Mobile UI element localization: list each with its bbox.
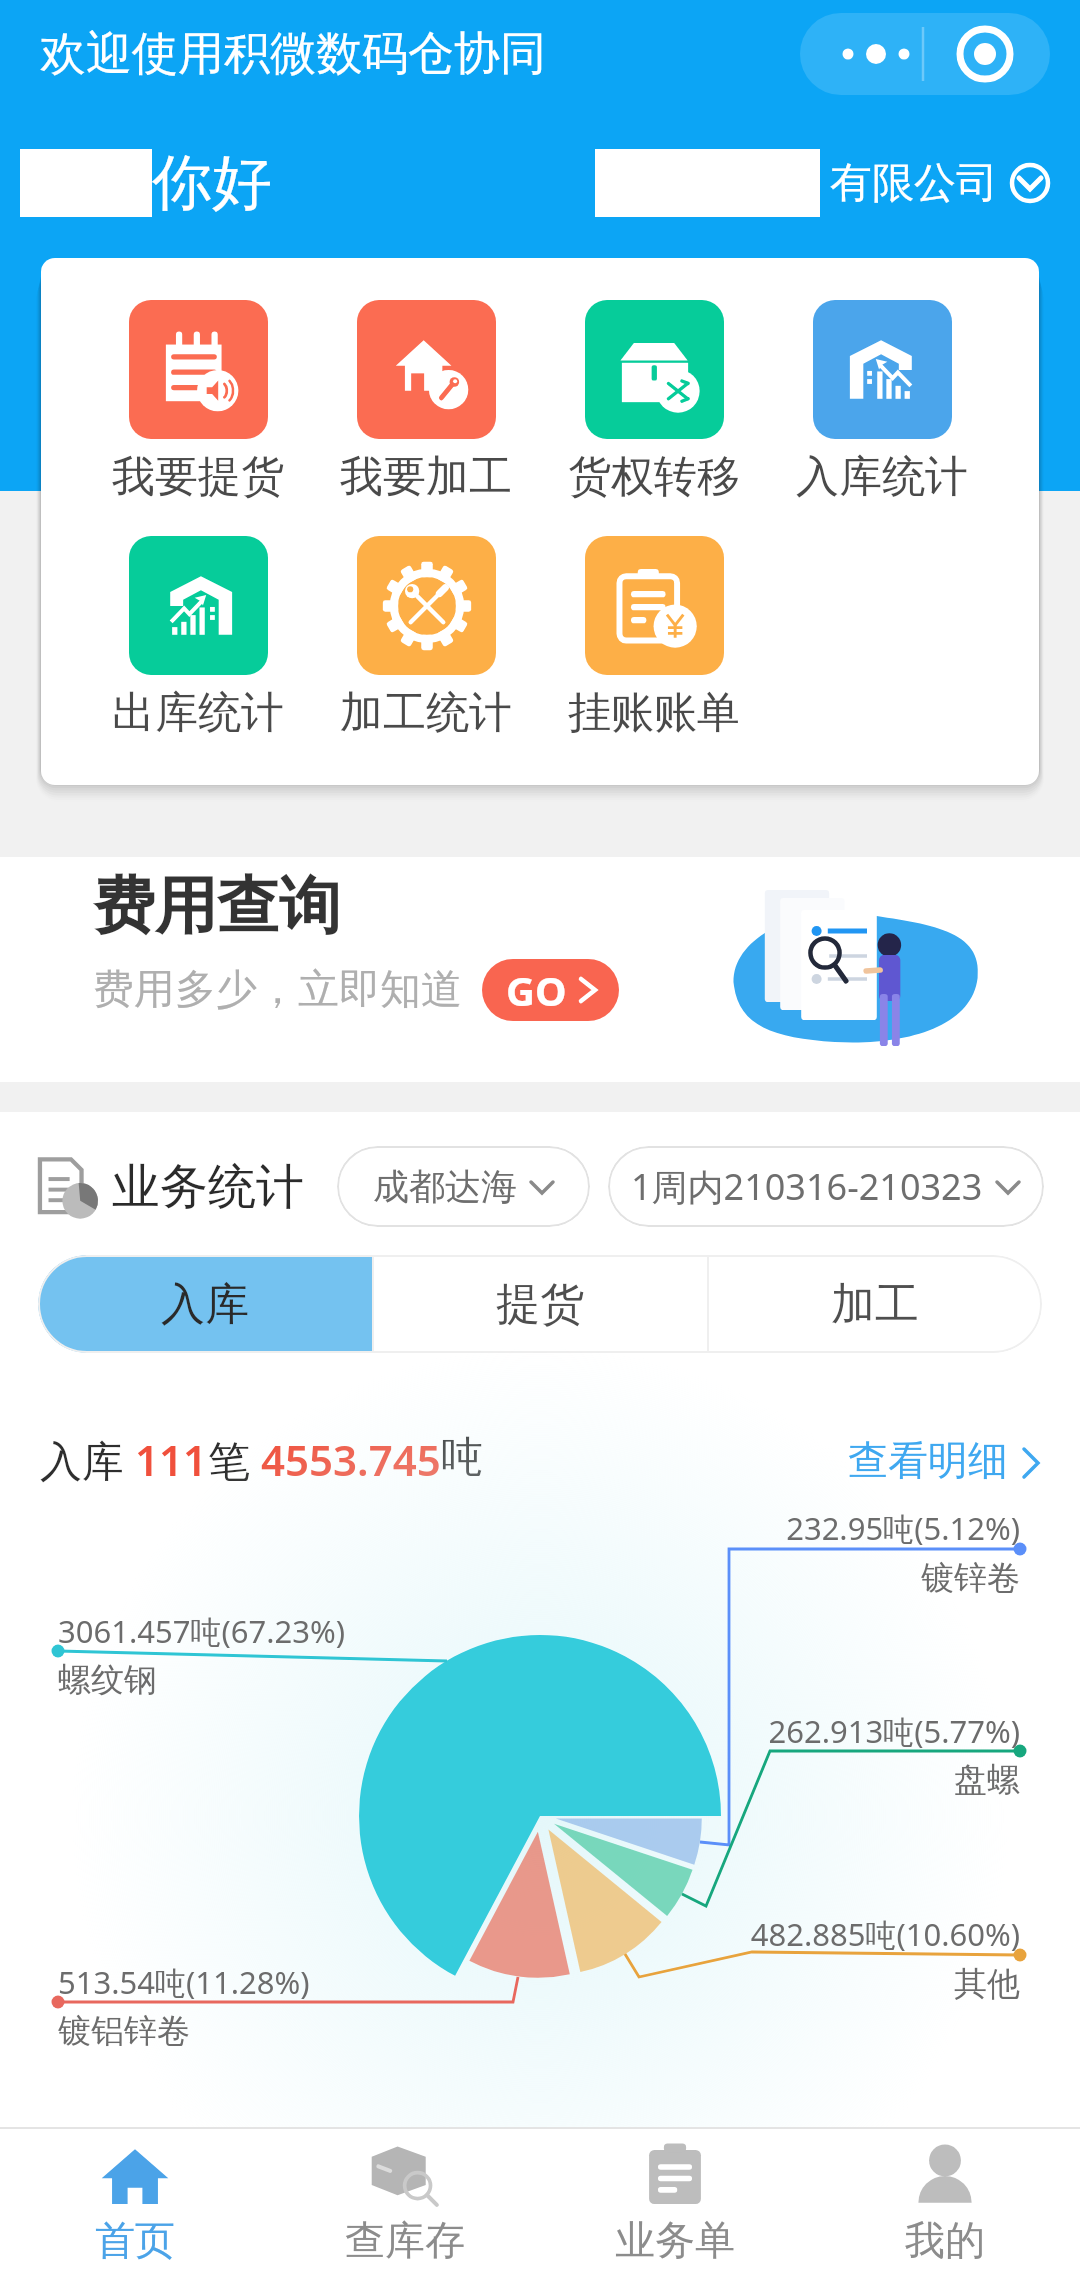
button[interactable]: 入库	[38, 1255, 372, 1353]
staticText: 欢迎使用积微数码仓协同	[40, 25, 546, 83]
staticText: 你好	[152, 145, 272, 221]
button[interactable]: 加工统计	[312, 536, 540, 740]
button[interactable]: 入库统计	[768, 300, 996, 504]
button[interactable]: 菜单	[800, 13, 1050, 95]
staticText: 货权转移	[568, 450, 740, 504]
button[interactable]: 业务单	[540, 2139, 810, 2272]
staticText: 提货	[496, 1277, 584, 1332]
staticText: 4553.745	[261, 1431, 441, 1488]
staticText: 513.54吨(11.28%)	[58, 1961, 488, 2003]
staticText: 挂账账单	[568, 686, 740, 740]
staticText: 业务单	[615, 2215, 735, 2265]
button[interactable]: 查看明细	[848, 1435, 1046, 1485]
button[interactable]: 成都达海	[337, 1146, 590, 1227]
staticText: 加工	[831, 1277, 919, 1332]
staticText: 螺纹钢	[58, 1659, 488, 1701]
staticText: 加工统计	[340, 686, 512, 740]
staticText: 吨	[441, 1431, 483, 1484]
button[interactable]: 首页	[0, 2139, 270, 2272]
button[interactable]: GO	[482, 959, 619, 1021]
button[interactable]: 1周内210316-210323	[608, 1146, 1044, 1227]
staticText: 费用多少，立即知道	[93, 964, 462, 1016]
staticText: 我要加工	[340, 450, 512, 504]
button[interactable]: 提货	[372, 1255, 707, 1353]
staticText: 我要提货	[112, 450, 284, 504]
staticText: 出库统计	[112, 686, 284, 740]
staticText: 入库	[40, 1431, 135, 1488]
staticText: 查库存	[345, 2215, 465, 2265]
staticText: 费用查询	[93, 867, 341, 945]
staticText: 业务统计	[112, 1157, 304, 1217]
staticText: 查看明细	[848, 1435, 1008, 1485]
button[interactable]: 挂账账单	[540, 536, 768, 740]
staticText: 入库	[161, 1277, 249, 1332]
button[interactable]: 我要加工	[312, 300, 540, 504]
staticText: 1周内210316-210323	[631, 1162, 983, 1211]
staticText: 111	[135, 1431, 208, 1488]
staticText: 盘螺	[590, 1759, 1020, 1801]
button[interactable]: 我要提货	[84, 300, 312, 504]
button[interactable]: 查库存	[270, 2139, 540, 2272]
staticText: 笔	[208, 1431, 261, 1488]
staticText: 我的	[905, 2215, 985, 2265]
staticText: 482.885吨(10.60%)	[590, 1913, 1020, 1955]
staticText: 232.95吨(5.12%)	[590, 1507, 1020, 1549]
staticText: 有限公司	[830, 157, 998, 210]
staticText: 成都达海	[373, 1164, 517, 1209]
button[interactable]: 加工	[707, 1255, 1042, 1353]
staticText: 3061.457吨(67.23%)	[58, 1610, 488, 1652]
staticText: 首页	[95, 2215, 175, 2265]
staticText: 其他	[590, 1963, 1020, 2005]
staticText: 262.913吨(5.77%)	[590, 1710, 1020, 1752]
staticText: 镀铝锌卷	[58, 2010, 488, 2052]
other: 切换公司	[1010, 163, 1050, 203]
staticText: 入库统计	[796, 450, 968, 504]
button[interactable]: 我的	[810, 2139, 1080, 2272]
staticText: GO	[506, 963, 567, 1017]
button[interactable]: 出库统计	[84, 536, 312, 740]
button[interactable]: 货权转移	[540, 300, 768, 504]
staticText: 镀锌卷	[590, 1557, 1020, 1599]
